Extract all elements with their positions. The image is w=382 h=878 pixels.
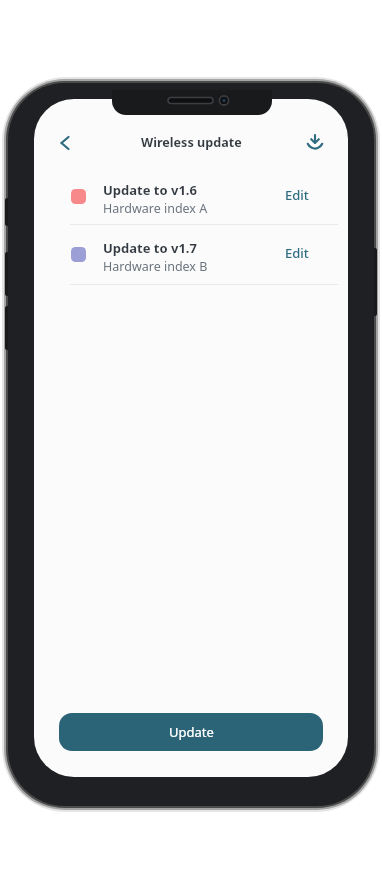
- staticText: Edit: [285, 244, 309, 262]
- button[interactable]: Edit: [285, 244, 309, 262]
- staticText: Update to v1.6: [103, 181, 197, 199]
- button[interactable]: Update to v1.6: [34, 183, 348, 224]
- button[interactable]: [301, 129, 329, 157]
- staticText: Hardware index B: [103, 258, 208, 275]
- staticText: Wireless update: [141, 134, 242, 151]
- button[interactable]: Update: [59, 713, 323, 751]
- staticText: Edit: [285, 186, 309, 204]
- button[interactable]: Edit: [285, 186, 309, 204]
- staticText: Update to v1.7: [103, 239, 197, 257]
- button[interactable]: Update to v1.7: [34, 241, 348, 282]
- button[interactable]: [50, 129, 78, 157]
- staticText: Hardware index A: [103, 200, 208, 217]
- staticText: Update: [169, 723, 214, 741]
